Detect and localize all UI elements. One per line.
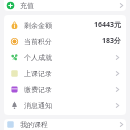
staticText: 16443元 [93,20,121,30]
staticText: 消息通知 [24,101,52,110]
button[interactable]: 上课记录 [4,65,126,81]
staticText: 上课记录 [24,69,52,78]
button[interactable]: 我的课程 [4,119,126,130]
button[interactable]: 充值 [4,0,126,11]
staticText: 充值 [20,1,34,10]
button[interactable]: 当前积分 [4,33,126,49]
staticText: 个人成就 [24,53,52,62]
staticText: 当前积分 [24,37,52,46]
button[interactable]: 消息通知 [4,97,126,113]
staticText: 缴费记录 [24,85,52,94]
staticText: 183分 [101,36,121,46]
button[interactable]: 个人成就 [4,49,126,65]
staticText: 我的课程 [20,120,48,129]
button[interactable]: 剩余金额 [4,17,126,33]
button[interactable]: 缴费记录 [4,81,126,97]
staticText: 剩余金额 [24,21,52,30]
